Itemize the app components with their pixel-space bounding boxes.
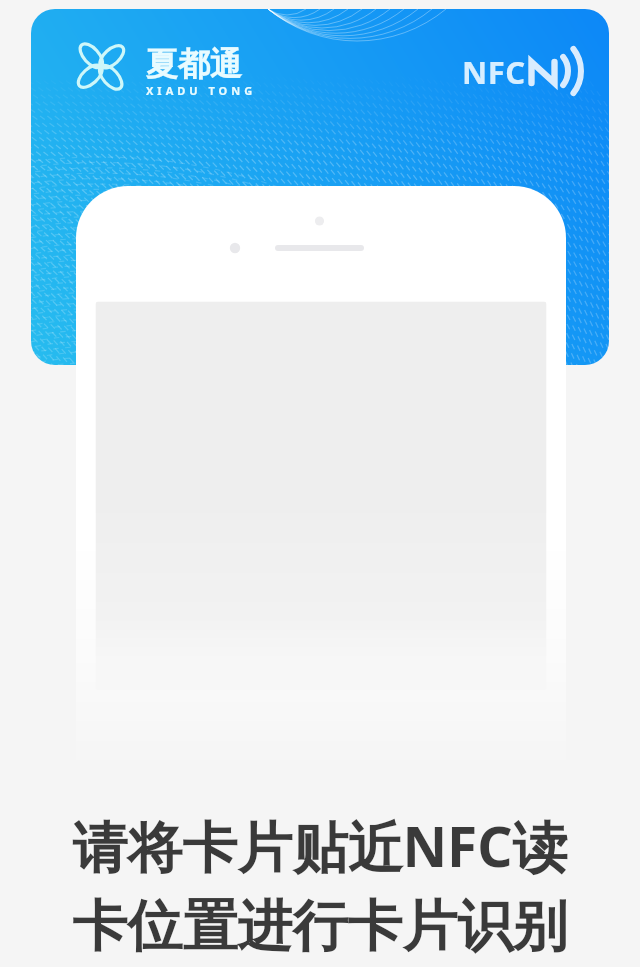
staticText: NFC	[462, 51, 526, 93]
staticText: XIADU TONG	[146, 83, 257, 98]
staticText: 卡位置进行卡片识别	[0, 892, 640, 961]
staticText: 夏都通	[146, 44, 242, 84]
staticText: 请将卡片贴近NFC读	[0, 808, 640, 883]
